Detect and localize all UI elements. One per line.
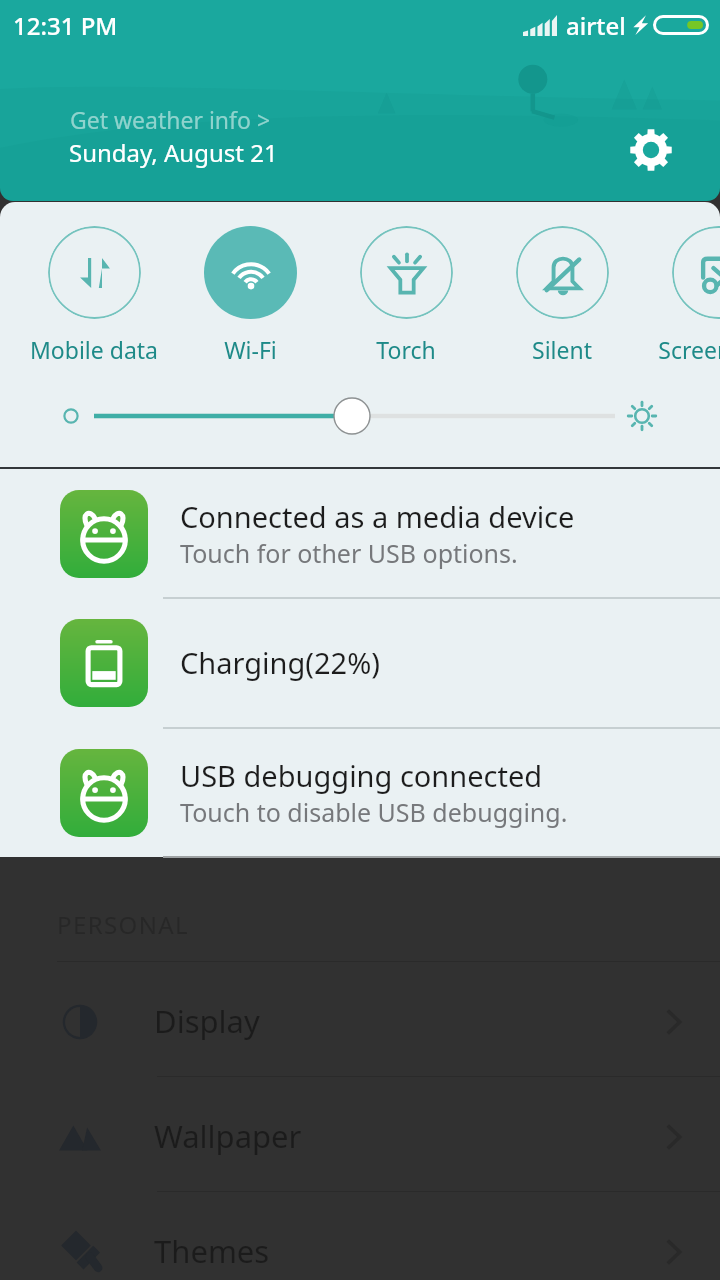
button[interactable]: Get weather info > <box>70 104 271 135</box>
staticText: Themes <box>154 1230 270 1272</box>
staticText: Screenshot <box>658 334 720 365</box>
staticText: Touch to disable USB debugging. <box>180 795 568 829</box>
button[interactable]: Torch <box>328 226 484 381</box>
staticText: Wallpaper <box>154 1115 302 1157</box>
button[interactable]: Mobile data <box>16 226 172 381</box>
button[interactable]: Charging(22%) <box>0 598 720 727</box>
button[interactable]: Settings <box>623 122 679 178</box>
button[interactable]: Wi-Fi <box>172 226 328 381</box>
button[interactable]: Brightness <box>0 384 720 448</box>
staticText: Charging(22%) <box>180 643 380 682</box>
staticText: Display <box>154 1000 260 1042</box>
staticText: USB debugging connected <box>180 756 543 795</box>
button[interactable]: Silent <box>484 226 640 381</box>
staticText: airtel <box>566 9 626 42</box>
staticText: Wi-Fi <box>224 334 277 365</box>
button[interactable]: Connected as a media device <box>0 469 720 598</box>
staticText: Torch <box>376 334 436 365</box>
staticText: Mobile data <box>30 334 158 365</box>
staticText: Touch for other USB options. <box>180 536 518 570</box>
staticText: Connected as a media device <box>180 497 575 536</box>
button[interactable]: Screenshot <box>640 226 720 381</box>
staticText: Sunday, August 21 <box>69 136 278 169</box>
button[interactable]: USB debugging connected <box>0 728 720 857</box>
staticText: 12:31 PM <box>13 9 118 42</box>
staticText: PERSONAL <box>57 908 190 941</box>
staticText: Silent <box>532 334 592 365</box>
